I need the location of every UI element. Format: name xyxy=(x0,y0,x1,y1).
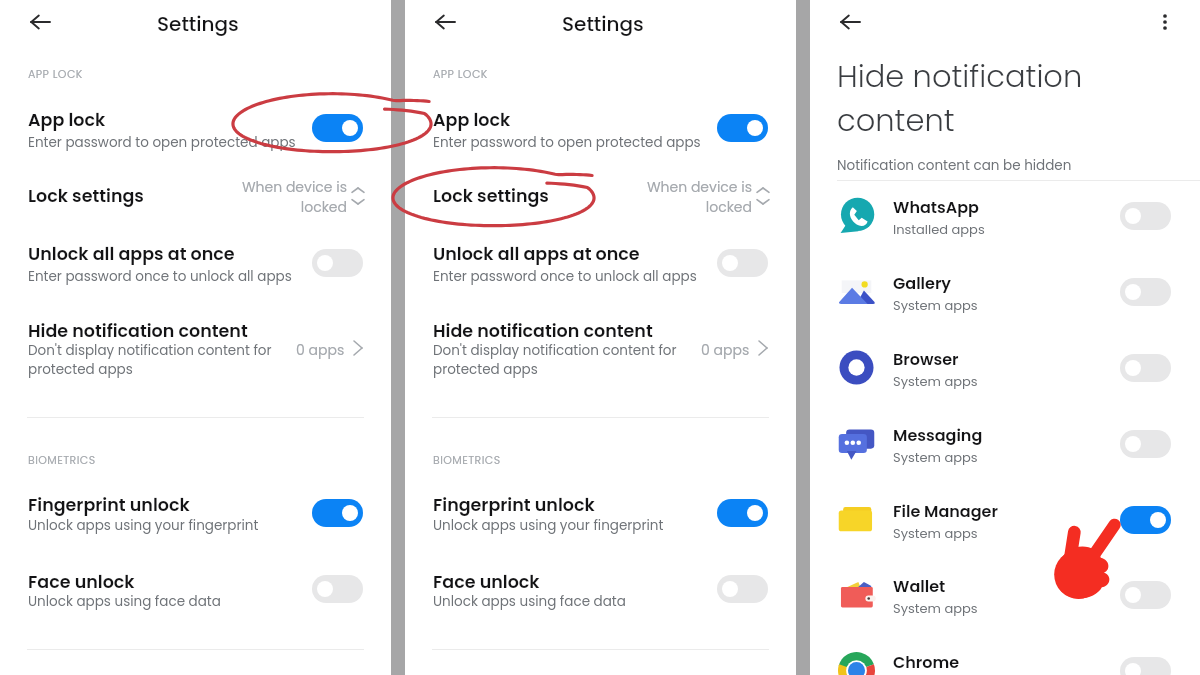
staticText: Unlock all apps at once xyxy=(433,242,640,267)
button[interactable]: More options xyxy=(1147,4,1183,40)
staticText: 0 apps xyxy=(701,340,750,360)
staticText: protected apps xyxy=(433,360,538,379)
button[interactable]: Wallet xyxy=(810,566,1200,642)
staticText: Fingerprint unlock xyxy=(28,493,190,518)
staticText: Hide notification content xyxy=(837,55,1083,142)
staticText: Face unlock xyxy=(28,570,135,595)
staticText: APP LOCK xyxy=(28,66,83,81)
button[interactable]: Back xyxy=(22,4,58,40)
staticText: Enter password once to unlock all apps xyxy=(28,267,292,286)
button[interactable]: Toggle on xyxy=(312,499,363,527)
staticText: Unlock all apps at once xyxy=(28,242,235,267)
button[interactable]: Back xyxy=(832,4,868,40)
button[interactable]: Back xyxy=(427,4,463,40)
button[interactable]: Face unlock xyxy=(405,558,796,620)
staticText: Browser xyxy=(893,348,959,370)
staticText: Gallery xyxy=(893,272,952,294)
button[interactable]: Toggle on xyxy=(717,114,768,142)
staticText: APP LOCK xyxy=(433,66,488,81)
staticText: System apps xyxy=(893,296,978,314)
staticText: Chrome xyxy=(893,651,960,673)
button[interactable]: Fingerprint unlock xyxy=(0,481,391,543)
staticText: protected apps xyxy=(28,360,133,379)
button[interactable]: App lock xyxy=(0,96,391,158)
staticText: Hide notification content xyxy=(28,319,248,344)
staticText: 0 apps xyxy=(296,340,345,360)
staticText: Don't display notification content for xyxy=(28,341,272,360)
button[interactable]: Toggle off xyxy=(1120,354,1171,382)
button[interactable]: Toggle off xyxy=(312,249,363,277)
button[interactable]: Toggle on xyxy=(312,114,363,142)
button[interactable]: Toggle off xyxy=(312,575,363,603)
staticText: File Manager xyxy=(893,500,998,522)
staticText: App lock xyxy=(28,108,106,133)
button[interactable]: Toggle on xyxy=(717,499,768,527)
staticText: Enter password once to unlock all apps xyxy=(433,267,697,286)
button[interactable]: Lock settings xyxy=(405,170,796,224)
button[interactable]: Toggle off xyxy=(1120,278,1171,306)
staticText: System apps xyxy=(893,599,978,617)
staticText: Wallet xyxy=(893,575,946,597)
staticText: Fingerprint unlock xyxy=(433,493,595,518)
button[interactable]: WhatsApp xyxy=(810,187,1200,263)
button[interactable]: Hide notification content xyxy=(0,307,391,389)
staticText: Unlock apps using face data xyxy=(433,592,626,611)
button[interactable]: App lock xyxy=(405,96,796,158)
staticText: Face unlock xyxy=(433,570,540,595)
button[interactable]: Fingerprint unlock xyxy=(405,481,796,543)
button[interactable]: Toggle off xyxy=(1120,657,1171,675)
button[interactable]: Toggle off xyxy=(1120,581,1171,609)
staticText: When device is locked xyxy=(233,177,347,217)
button[interactable]: Browser xyxy=(810,339,1200,415)
button[interactable]: Hide notification content xyxy=(405,307,796,389)
staticText: System apps xyxy=(893,372,978,390)
staticText: Enter password to open protected apps xyxy=(433,133,701,152)
button[interactable]: Lock settings xyxy=(0,170,391,224)
staticText: Unlock apps using your fingerprint xyxy=(433,516,664,535)
button[interactable]: Unlock all apps at once xyxy=(0,230,391,292)
button[interactable]: Messaging xyxy=(810,415,1200,491)
button[interactable]: Face unlock xyxy=(0,558,391,620)
button[interactable]: File Manager xyxy=(810,491,1200,567)
staticText: BIOMETRICS xyxy=(28,452,96,467)
staticText: System apps xyxy=(893,524,978,542)
staticText: Enter password to open protected apps xyxy=(28,133,296,152)
button[interactable]: Toggle off xyxy=(717,575,768,603)
staticText: Lock settings xyxy=(433,184,549,209)
button[interactable]: Gallery xyxy=(810,263,1200,339)
staticText: Don't display notification content for xyxy=(433,341,677,360)
staticText: System apps xyxy=(893,448,978,466)
staticText: Installed apps xyxy=(893,220,985,238)
button[interactable]: Toggle off xyxy=(1120,430,1171,458)
staticText: Notification content can be hidden xyxy=(837,156,1072,175)
staticText: WhatsApp xyxy=(893,196,979,218)
staticText: Messaging xyxy=(893,424,983,446)
button[interactable]: Toggle on xyxy=(1120,506,1171,534)
staticText: BIOMETRICS xyxy=(433,452,501,467)
staticText: When device is locked xyxy=(638,177,752,217)
button[interactable]: Toggle off xyxy=(1120,202,1171,230)
staticText: Settings xyxy=(562,10,644,38)
button[interactable]: Toggle off xyxy=(717,249,768,277)
button[interactable]: Unlock all apps at once xyxy=(405,230,796,292)
button[interactable]: Chrome xyxy=(810,642,1200,675)
staticText: Hide notification content xyxy=(433,319,653,344)
staticText: Unlock apps using face data xyxy=(28,592,221,611)
staticText: Settings xyxy=(157,10,239,38)
staticText: Unlock apps using your fingerprint xyxy=(28,516,259,535)
staticText: App lock xyxy=(433,108,511,133)
staticText: Lock settings xyxy=(28,184,144,209)
